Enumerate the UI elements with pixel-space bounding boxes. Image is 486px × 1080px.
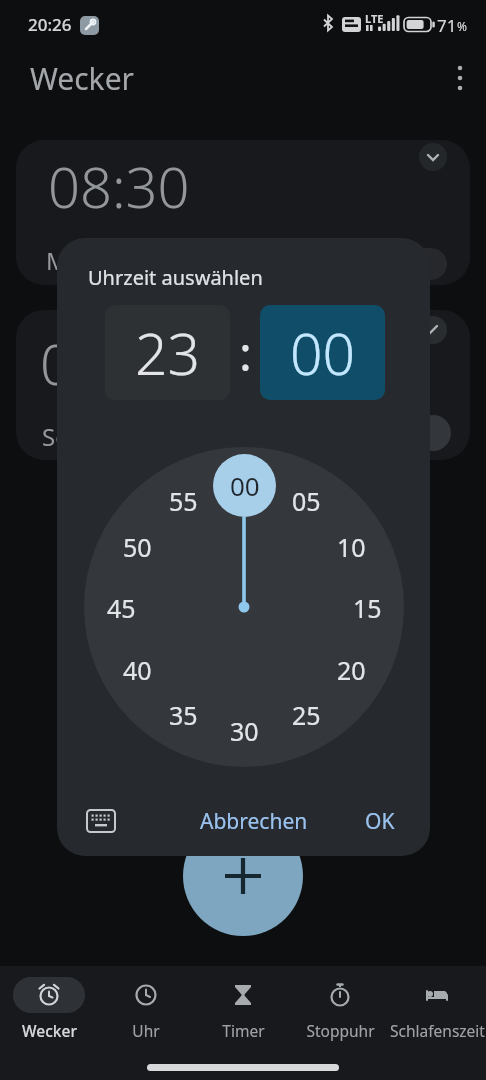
staticText: OK: [365, 807, 395, 836]
button[interactable]: Timer: [191, 966, 295, 1050]
button[interactable]: [183, 816, 303, 936]
button[interactable]: 00: [260, 305, 385, 400]
button[interactable]: 35: [161, 698, 205, 730]
button[interactable]: Wecker: [0, 966, 101, 1050]
staticText: 50: [123, 530, 152, 562]
button[interactable]: 07:00: [16, 310, 470, 460]
staticText: Schlafenszeit: [390, 1020, 485, 1041]
staticText: 00: [230, 468, 260, 503]
staticText: 30: [230, 714, 259, 746]
staticText: 45: [107, 591, 136, 623]
staticText: :: [239, 320, 252, 385]
button[interactable]: 20: [329, 653, 373, 685]
staticText: Stoppuhr: [306, 1020, 375, 1041]
staticText: 05: [292, 484, 321, 516]
staticText: 10: [337, 530, 366, 562]
button[interactable]: [415, 415, 451, 451]
button[interactable]: 25: [284, 698, 328, 730]
button[interactable]: 55: [161, 484, 205, 516]
button[interactable]: Uhr: [94, 966, 198, 1050]
staticText: Wecker: [22, 1020, 77, 1041]
button[interactable]: [419, 316, 447, 344]
staticText: 35: [169, 698, 198, 730]
button[interactable]: Stoppuhr: [288, 966, 392, 1050]
staticText: 00: [290, 314, 356, 392]
staticText: 40: [123, 653, 152, 685]
staticText: Mo., 8:30: [46, 244, 150, 277]
staticText: 07:00: [40, 325, 182, 401]
staticText: 55: [169, 484, 198, 516]
button[interactable]: 10: [329, 530, 373, 562]
staticText: 71: [437, 14, 457, 37]
staticText: Uhrzeit auswählen: [88, 264, 263, 291]
button[interactable]: Abbrechen: [194, 803, 314, 839]
staticText: So., 7:00: [42, 420, 137, 453]
staticText: 20: [337, 653, 366, 685]
staticText: 25: [292, 698, 321, 730]
staticText: Uhr: [132, 1020, 160, 1041]
button[interactable]: 30: [222, 714, 266, 746]
button[interactable]: 15: [345, 591, 389, 623]
button[interactable]: 05: [284, 484, 328, 516]
staticText: Timer: [222, 1020, 265, 1041]
button[interactable]: OK: [352, 803, 408, 839]
staticText: 08:30: [48, 148, 190, 224]
button[interactable]: 08:30: [16, 140, 470, 285]
button[interactable]: 23: [105, 305, 230, 400]
staticText: Abbrechen: [200, 807, 308, 836]
button[interactable]: [419, 143, 447, 171]
button[interactable]: [87, 810, 115, 832]
button[interactable]: 45: [99, 591, 143, 623]
button[interactable]: [393, 248, 447, 280]
staticText: %: [457, 18, 467, 34]
button[interactable]: 50: [115, 530, 159, 562]
button[interactable]: [450, 64, 470, 94]
staticText: Wecker: [30, 58, 134, 99]
staticText: 15: [353, 591, 382, 623]
staticText: 23: [135, 314, 201, 392]
button[interactable]: Schlafenszeit: [385, 966, 486, 1050]
button[interactable]: 40: [115, 653, 159, 685]
staticText: 20:26: [28, 13, 72, 36]
staticText: LTE: [365, 11, 384, 26]
button[interactable]: 00: [213, 454, 276, 517]
